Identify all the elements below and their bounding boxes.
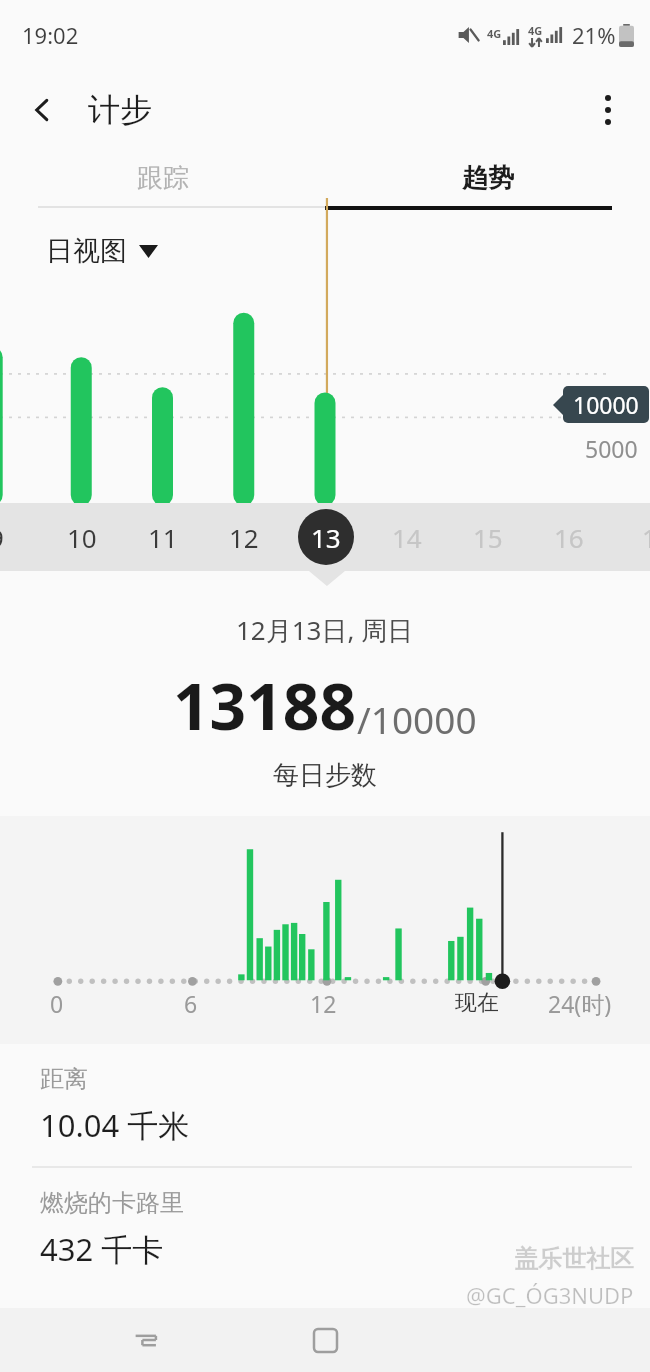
staticText: 距离 xyxy=(40,1064,88,1094)
staticText: 日视图 xyxy=(46,234,127,268)
staticText: 14 xyxy=(392,520,422,555)
staticText: 12 xyxy=(229,520,259,555)
staticText: 19:02 xyxy=(22,20,79,50)
button[interactable]: 14 xyxy=(378,508,436,566)
button[interactable]: 11 xyxy=(134,508,192,566)
staticText: 21% xyxy=(572,20,616,50)
staticText: 6 xyxy=(184,988,198,1019)
button[interactable]: 距离 xyxy=(0,1044,650,1166)
button[interactable]: 主屏幕 xyxy=(289,1308,361,1372)
button[interactable]: 15 xyxy=(459,508,517,566)
staticText: 15 xyxy=(473,520,503,555)
staticText: 24(时) xyxy=(548,988,612,1019)
staticText: 现在 xyxy=(455,989,499,1017)
button[interactable]: 12 xyxy=(215,508,273,566)
staticText: 燃烧的卡路里 xyxy=(40,1188,184,1218)
staticText: 4G xyxy=(487,26,502,41)
staticText: 跟踪 xyxy=(137,162,189,195)
button[interactable]: 16 xyxy=(540,508,598,566)
staticText: @GC_ÓG3NUDP xyxy=(466,1280,634,1310)
staticText: 11 xyxy=(148,520,178,555)
staticText: 计步 xyxy=(88,90,152,130)
button[interactable]: 更多选项 xyxy=(580,82,636,138)
button[interactable]: 燃烧的卡路里 xyxy=(0,1168,650,1290)
staticText: 10 xyxy=(67,520,97,555)
staticText: 13188 xyxy=(173,662,357,749)
staticText: 5000 xyxy=(585,433,638,464)
staticText: 12 xyxy=(310,988,337,1019)
staticText: 每日步数 xyxy=(273,759,377,792)
staticText: 盖乐世社区 xyxy=(514,1244,634,1274)
staticText: 10000 xyxy=(573,389,639,420)
staticText: 1 xyxy=(642,520,650,555)
staticText: 趋势 xyxy=(462,162,514,195)
button[interactable]: 跟踪 xyxy=(0,150,325,206)
button[interactable]: 返回 xyxy=(14,82,70,138)
button[interactable]: 13 xyxy=(297,508,355,566)
button[interactable]: 10 xyxy=(53,508,111,566)
staticText: 4G xyxy=(528,23,543,38)
staticText: 12月13日, 周日 xyxy=(236,612,414,648)
staticText: 0 xyxy=(50,988,64,1019)
staticText: /10000 xyxy=(357,694,477,744)
button[interactable]: 日视图 xyxy=(46,234,158,268)
button[interactable]: 1 xyxy=(620,508,650,566)
button[interactable]: 趋势 xyxy=(325,150,650,206)
staticText: 432 千卡 xyxy=(40,1228,164,1270)
staticText: 10.04 千米 xyxy=(40,1104,190,1146)
staticText: 13 xyxy=(311,520,341,555)
staticText: 9 xyxy=(0,520,4,555)
button[interactable]: 9 xyxy=(0,508,25,566)
button[interactable]: 最近应用 xyxy=(109,1308,181,1372)
staticText: 16 xyxy=(554,520,584,555)
